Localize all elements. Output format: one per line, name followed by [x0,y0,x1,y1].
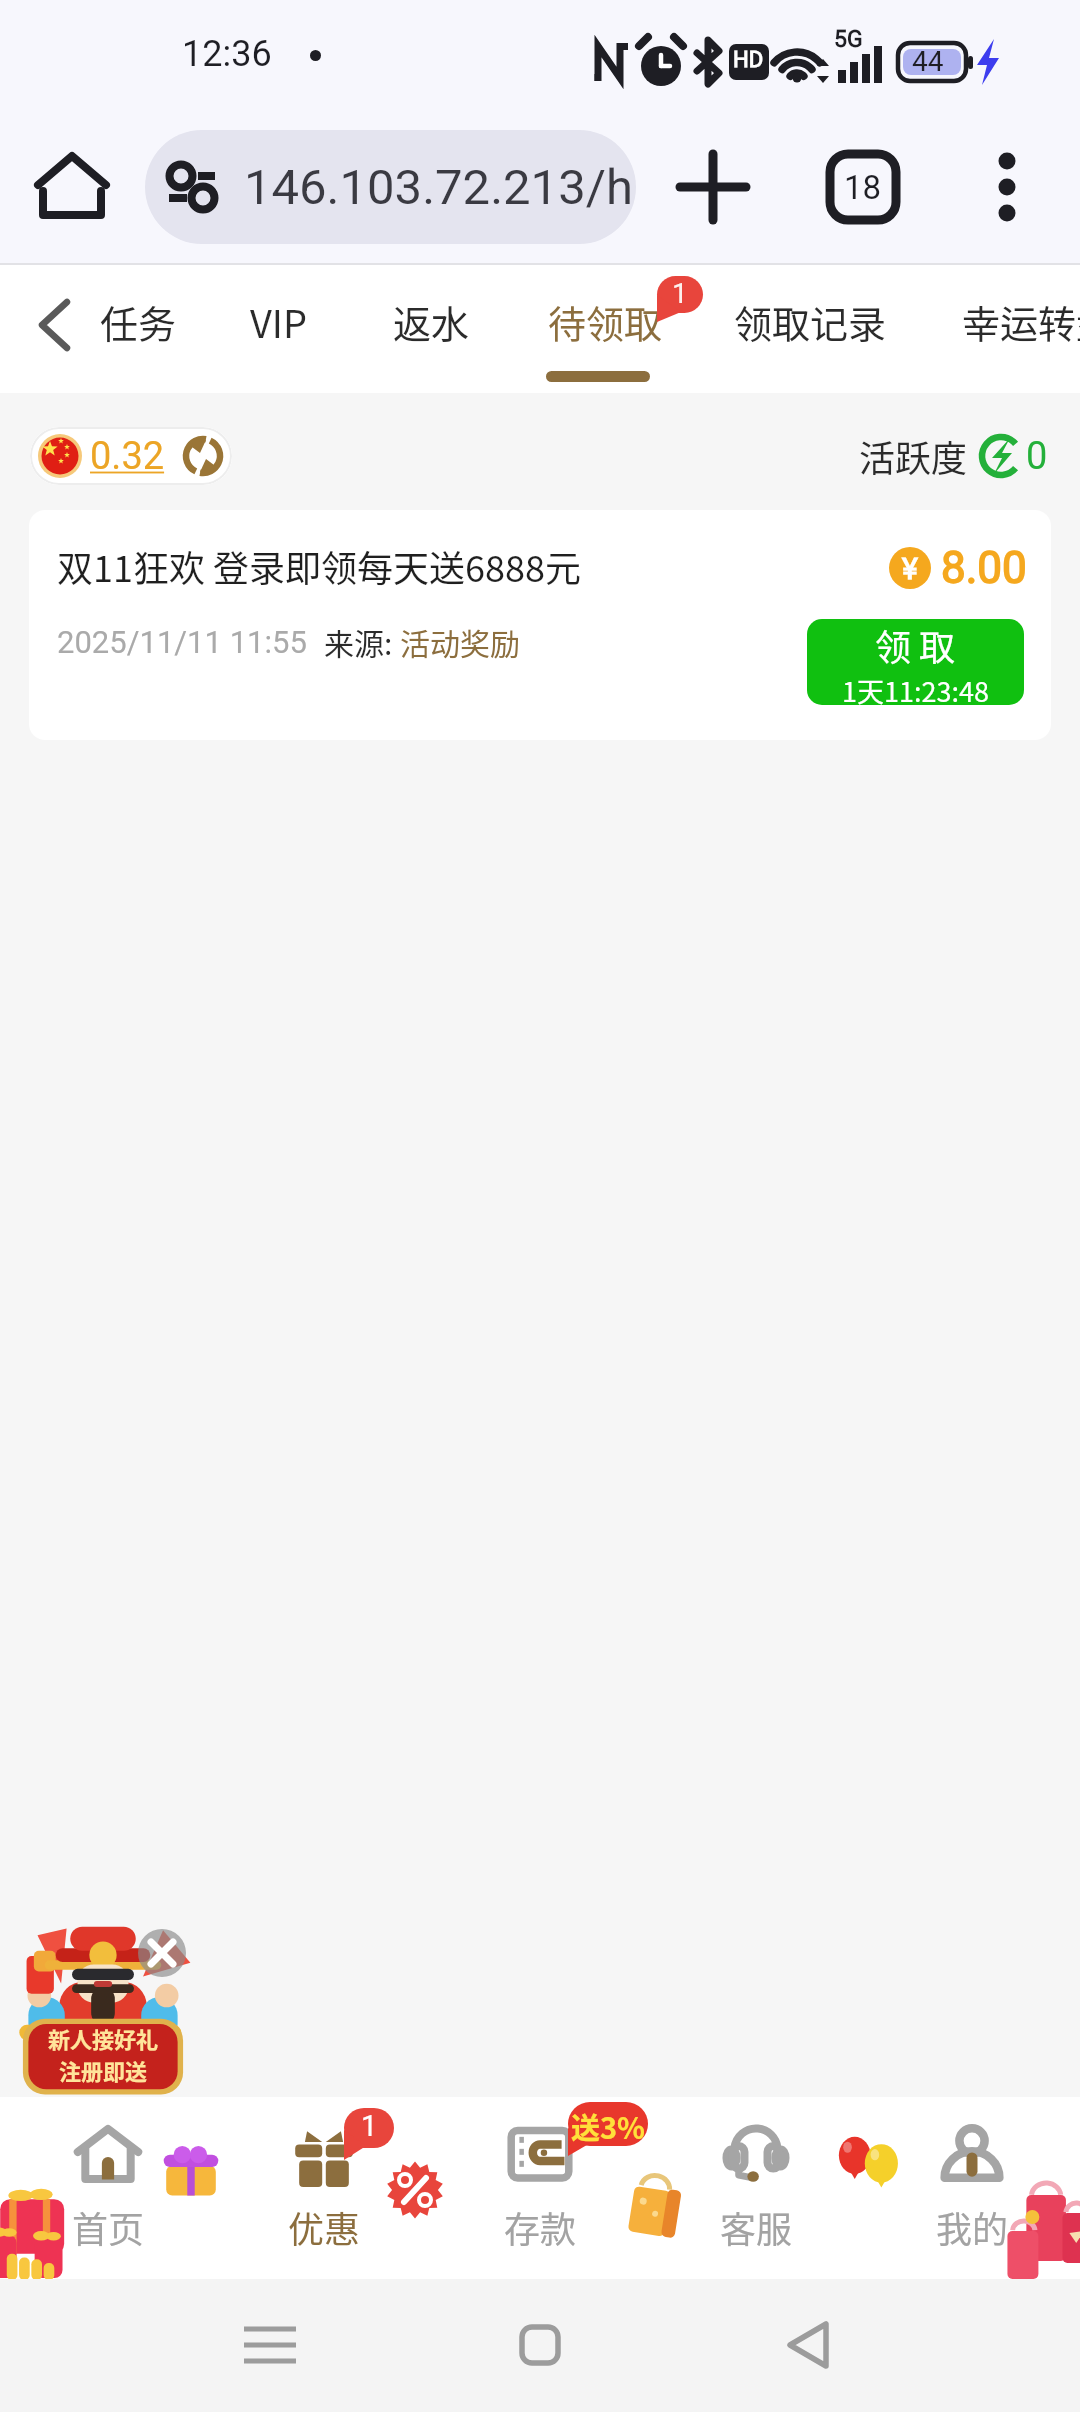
button[interactable]: Recent apps [228,2303,312,2387]
staticText: 存款 [504,2201,577,2253]
button[interactable]: 双11狂欢 登录即领每天送6888元 [29,510,1051,740]
button[interactable]: Tabs [818,142,908,232]
button[interactable]: 0.32 [30,427,232,485]
staticText: 0.32 [90,434,165,479]
staticText: 5G [834,26,863,53]
staticText: 1天11:23:48 [842,671,989,705]
staticText: 18 [844,168,882,207]
staticText: 注册即送 [59,2054,148,2086]
button[interactable]: Promotion [12,1925,194,2097]
staticText: 任务 [100,294,177,349]
button[interactable]: VIP [234,265,324,393]
staticText: 首页 [72,2201,145,2253]
staticText: 146.103.72.213/h [244,159,633,216]
button[interactable]: 领取记录 [718,265,903,393]
staticText: 领 取 [875,619,956,671]
staticText: 领取记录 [734,294,887,349]
staticText: 幸运转盘 [962,294,1080,349]
staticText: 返水 [393,294,470,349]
staticText: 新人接好礼 [48,2022,159,2054]
staticText: 12:36 [182,33,272,75]
staticText: 8.00 [941,542,1027,594]
staticText: 送3% [571,2105,646,2147]
staticText: 活跃度 [859,430,968,482]
button[interactable]: 待领取 [532,265,679,393]
staticText: HD [733,47,764,73]
button[interactable]: 我的 [864,2097,1080,2279]
staticText: 客服 [720,2201,793,2253]
staticText: 来源: [324,620,400,663]
staticText: 优惠 [288,2201,361,2253]
staticText: 0 [1026,434,1048,479]
staticText: 我的 [936,2201,1009,2253]
staticText: 2025/11/11 11:55 [57,624,307,660]
button[interactable]: Close [138,1929,186,1977]
button[interactable]: Back [10,289,90,369]
button[interactable]: 优惠 [216,2097,432,2279]
button[interactable]: 幸运转盘 [946,265,1080,393]
button[interactable]: Back [768,2303,852,2387]
staticText: 44 [912,45,944,78]
button[interactable]: 返水 [377,265,486,393]
button[interactable]: New tab [668,142,758,232]
staticText: 双11狂欢 登录即领每天送6888元 [57,540,581,592]
button[interactable]: 任务 [84,265,193,393]
button[interactable]: Home [28,143,116,231]
staticText: VIP [250,294,308,349]
other: Refresh [183,436,223,476]
staticText: 1 [361,2109,378,2143]
staticText: ¥ [902,551,918,586]
button[interactable]: 首页 [0,2097,216,2279]
button[interactable]: 存款 [432,2097,648,2279]
button[interactable]: More options [962,142,1052,232]
button[interactable]: 领 取 [807,619,1024,705]
staticText: 活动奖励 [400,620,520,663]
button[interactable]: 客服 [648,2097,864,2279]
button[interactable]: Home [498,2303,582,2387]
staticText: 待领取 [548,294,663,349]
staticText: 1 [672,277,688,310]
button[interactable]: Address bar [145,130,636,244]
